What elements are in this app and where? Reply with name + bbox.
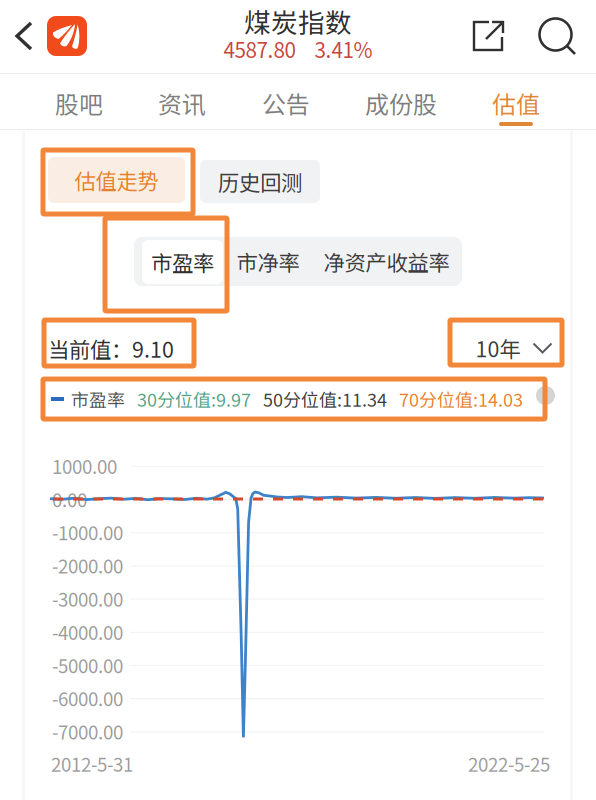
staticText: 2022-5-25 [468,750,550,777]
button[interactable]: 历史回测 [200,160,320,203]
staticText: -6000.00 [52,685,123,712]
staticText: 资讯 [158,86,206,120]
staticText: 2012-5-31 [51,750,133,777]
staticText: 当前值：9.10 [48,333,174,364]
staticText: 4587.80 [223,34,295,64]
staticText: 估值走势 [74,165,158,195]
button[interactable]: 搜索 [538,17,578,57]
staticText: 股吧 [55,86,103,120]
staticText: 市净率 [236,246,299,277]
button[interactable]: 市盈率 [142,240,223,284]
button[interactable]: 10年 [462,327,566,369]
button[interactable]: 资讯 [132,74,232,128]
button[interactable]: 股吧 [29,74,129,128]
button[interactable]: 同花顺 [47,16,87,56]
staticText: 净资产收益率 [323,246,449,277]
staticText: 历史回测 [218,166,302,197]
staticText: 50分位值:11.34 [263,386,387,412]
staticText: 30分位值:9.97 [137,386,251,412]
staticText: 1000.00 [52,452,117,479]
staticText: 煤炭指数 [244,2,352,40]
button[interactable]: 净资产收益率 [314,240,459,283]
staticText: 估值 [492,86,540,120]
button[interactable]: 市净率 [225,240,311,283]
staticText: 0.00 [52,485,87,512]
staticText: 成份股 [365,86,437,120]
button[interactable]: 估值 [466,74,566,128]
staticText: -7000.00 [52,718,123,745]
staticText: -2000.00 [52,552,123,579]
staticText: -4000.00 [52,618,123,645]
button[interactable]: 估值走势 [48,157,185,203]
button[interactable]: 分享 [472,20,506,54]
staticText: -1000.00 [52,519,123,546]
staticText: 市盈率 [151,247,214,277]
staticText: 公告 [262,86,310,120]
staticText: 市盈率 [71,386,125,412]
staticText: 3.41% [314,34,372,64]
staticText: 70分位值:14.03 [399,386,523,412]
staticText: -3000.00 [52,585,123,612]
staticText: 10年 [475,333,520,363]
button[interactable]: 返回 [4,14,44,58]
button[interactable]: 成份股 [351,74,451,128]
staticText: -5000.00 [52,651,123,678]
button[interactable]: 公告 [236,74,336,128]
